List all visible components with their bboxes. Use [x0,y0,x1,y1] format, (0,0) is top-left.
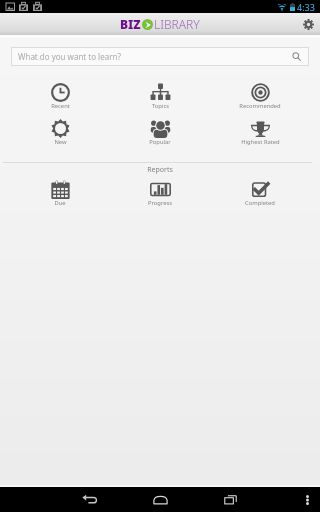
button[interactable]: Topics [110,83,210,110]
button[interactable]: More options [295,487,320,512]
button[interactable]: Recommended [210,83,310,110]
staticText: Recent [51,102,70,110]
staticText: Completed [245,199,275,207]
staticText: Recommended [239,102,281,110]
staticText: What do you want to learn? [18,51,121,62]
button[interactable]: Completed [210,180,310,207]
button[interactable]: Due [10,180,110,207]
button[interactable]: Recent [10,83,110,110]
staticText: Reports [0,165,320,175]
staticText: LIBRARY [154,16,200,32]
staticText: New [54,138,67,146]
button[interactable]: Back [64,487,116,512]
button[interactable]: New [10,119,110,146]
button[interactable]: Popular [110,119,210,146]
staticText: Popular [149,138,171,146]
staticText: BIZ [120,16,141,32]
staticText: Topics [152,102,169,110]
staticText: Due [54,199,66,207]
button[interactable]: Highest Rated [210,119,310,146]
button[interactable]: What do you want to learn? [11,47,309,66]
button[interactable]: Home [134,487,186,512]
staticText: 4:33 [297,1,315,13]
button[interactable]: Settings [297,13,320,35]
button[interactable]: Progress [110,180,210,207]
button[interactable]: Recent apps [204,487,256,512]
staticText: Highest Rated [241,138,280,146]
staticText: Progress [148,199,172,207]
